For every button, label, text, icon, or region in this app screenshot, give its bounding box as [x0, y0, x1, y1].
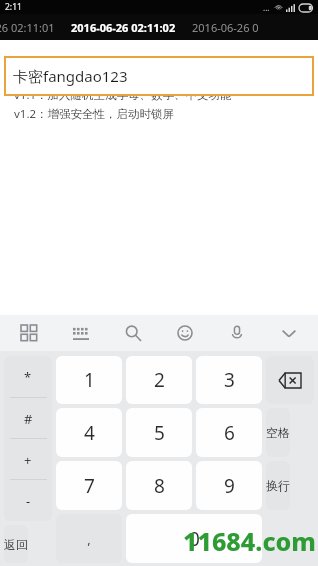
button[interactable]: + [4, 439, 52, 480]
staticText: v1.1：加入随机生成字母、数字、中文功能 [14, 87, 232, 103]
staticText: 11684.com [183, 524, 316, 558]
staticText: 8 [154, 473, 165, 499]
button[interactable]: 4 [56, 408, 122, 457]
staticText: ... [263, 2, 270, 13]
staticText: 2:11 [5, 1, 22, 13]
button[interactable]: -26 02:11:01 [0, 14, 63, 40]
button[interactable]: 2016-06-26 02:11:02 [63, 14, 184, 40]
staticText: 3 [224, 367, 235, 393]
button[interactable]: Search [118, 318, 148, 348]
button[interactable]: 返回 [4, 525, 28, 563]
staticText: * [24, 368, 32, 386]
button[interactable]: 9 [196, 461, 262, 510]
button[interactable]: 2016-06-26 0 [184, 14, 267, 40]
staticText: 0 [189, 526, 200, 552]
button[interactable]: 2 [126, 356, 192, 404]
button[interactable]: 5 [126, 408, 192, 457]
staticText: 6 [224, 420, 235, 446]
button[interactable]: 1 [56, 356, 122, 404]
staticText: 1 [84, 367, 95, 393]
staticText: 7 [84, 473, 95, 499]
staticText: + [24, 451, 32, 469]
staticText: 2 [154, 367, 165, 393]
button[interactable]: 7 [56, 461, 122, 510]
button[interactable]: Emoji [170, 318, 200, 348]
button[interactable]: 空格 [266, 408, 290, 457]
staticText: 4 [84, 420, 95, 446]
button[interactable]: Keyboard [66, 318, 96, 348]
staticText: - [26, 492, 31, 510]
button[interactable]: 6 [196, 408, 262, 457]
staticText: 返回 [4, 537, 28, 552]
button[interactable]: 卡密fangdao123 [4, 56, 314, 96]
button[interactable]: Apps [14, 318, 44, 348]
button[interactable]: 换行 [266, 461, 290, 510]
staticText: 换行 [266, 478, 290, 493]
button[interactable]: 3 [196, 356, 262, 404]
staticText: 9 [224, 473, 235, 499]
staticText: 2016-06-26 02:11:02 [71, 20, 176, 35]
button[interactable]: - [4, 480, 52, 521]
staticText: 2016-06-26 0 [192, 20, 259, 35]
staticText: 空格 [266, 425, 290, 440]
button[interactable]: 0 [126, 514, 262, 563]
button[interactable]: Voice input [222, 318, 252, 348]
button[interactable]: * [4, 356, 52, 398]
staticText: v1.0：实现核心基本功能，粘出文本时增删设置 [14, 68, 255, 84]
staticText: 卡密fangdao123 [13, 66, 128, 86]
button[interactable]: Delete [266, 356, 314, 404]
staticText: -26 02:11:01 [0, 20, 55, 35]
button[interactable]: Hide keyboard [274, 318, 304, 348]
staticText: # [24, 410, 33, 428]
staticText: 5 [154, 420, 165, 446]
button[interactable]: # [4, 398, 52, 439]
staticText: v1.2：增强安全性，启动时锁屏 [14, 106, 175, 122]
button[interactable]: 8 [126, 461, 192, 510]
button[interactable]: , [56, 514, 122, 563]
staticText: , [87, 530, 91, 548]
